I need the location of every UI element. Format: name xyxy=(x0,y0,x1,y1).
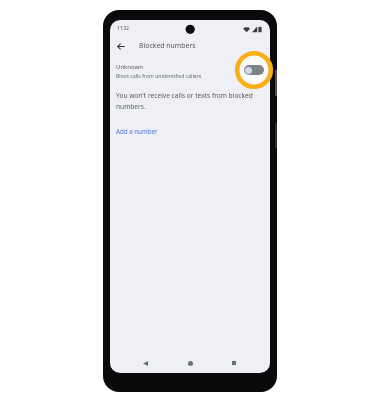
button[interactable]: Back xyxy=(138,356,152,370)
staticText: Add a number xyxy=(116,127,158,135)
button[interactable]: Recent apps xyxy=(227,356,241,370)
staticText: 11:32 xyxy=(117,25,129,31)
button[interactable]: Unknown xyxy=(110,59,270,81)
button[interactable]: Block calls from unidentified callers xyxy=(244,65,264,75)
button[interactable]: Home xyxy=(183,356,197,370)
staticText: Unknown xyxy=(116,63,143,71)
staticText: You won't receive calls or texts from bl… xyxy=(116,91,253,100)
button[interactable]: Back xyxy=(113,38,129,54)
button[interactable]: Add a number xyxy=(116,127,158,135)
staticText: numbers. xyxy=(116,102,146,111)
staticText: Blocked numbers xyxy=(139,41,196,50)
staticText: Block calls from unidentified callers xyxy=(116,72,202,79)
